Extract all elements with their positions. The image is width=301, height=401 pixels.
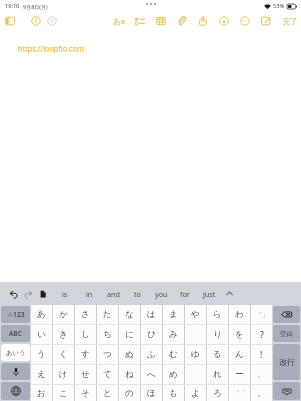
button[interactable]: Back (28, 13, 44, 29)
button[interactable]: り (207, 325, 228, 344)
button[interactable]: Attach (171, 13, 192, 29)
button[interactable]: よ (185, 385, 206, 401)
button[interactable]: and (101, 282, 125, 305)
staticText: れ (213, 369, 222, 380)
button[interactable]: Format (108, 13, 129, 29)
button[interactable]: め (163, 365, 184, 384)
button[interactable]: い (31, 325, 52, 344)
staticText: へ (147, 369, 156, 380)
staticText: え (37, 369, 46, 380)
button[interactable]: New note (255, 13, 276, 29)
button[interactable]: み (163, 325, 184, 344)
button[interactable]: た (97, 305, 118, 324)
button[interactable]: や (185, 305, 206, 324)
staticText: ABC (9, 329, 22, 338)
button[interactable]: す (75, 345, 96, 364)
button[interactable]: ん (229, 345, 250, 364)
button[interactable]: 改行 (273, 344, 300, 380)
button[interactable]: そ (75, 385, 96, 401)
button[interactable]: て (97, 365, 118, 384)
button[interactable]: と (97, 385, 118, 401)
button[interactable]: ち (97, 325, 118, 344)
button[interactable]: 「」 (251, 305, 272, 324)
button[interactable]: Paste (36, 287, 50, 301)
button[interactable]: わ (229, 305, 250, 324)
button[interactable]: Forward (44, 13, 60, 29)
button[interactable]: is (53, 282, 77, 305)
button[interactable]: Markup (213, 13, 234, 29)
button[interactable]: ま (163, 305, 184, 324)
button[interactable]: く (53, 345, 74, 364)
button[interactable]: just (197, 282, 221, 305)
button[interactable]: し (75, 325, 96, 344)
staticText: こ (59, 388, 68, 399)
button[interactable]: か (53, 305, 74, 324)
button[interactable]: き (53, 325, 74, 344)
button[interactable]: in (77, 282, 101, 305)
button[interactable]: ほ (141, 385, 162, 401)
button[interactable]: ! (251, 345, 272, 364)
button[interactable]: れ (207, 365, 228, 384)
button[interactable]: あいう (1, 344, 30, 361)
button[interactable]: ☆123 (1, 306, 30, 323)
staticText: https://loopfio.com (18, 43, 84, 53)
button[interactable]: も (163, 385, 184, 401)
button[interactable]: Checklist (129, 13, 150, 29)
staticText: わ (235, 309, 244, 320)
button[interactable]: な (119, 305, 140, 324)
button[interactable]: https://loopfio.com (18, 43, 84, 53)
button[interactable]: ら (207, 305, 228, 324)
button[interactable]: ね (119, 365, 140, 384)
button[interactable]: Hide keyboard (273, 382, 300, 400)
button[interactable]: せ (75, 365, 96, 384)
button[interactable]: お (31, 385, 52, 401)
button[interactable]: に (119, 325, 140, 344)
button[interactable]: む (163, 345, 184, 364)
button[interactable]: ー (229, 365, 250, 384)
staticText: き (59, 329, 68, 340)
button[interactable]: ゛゜ (229, 385, 250, 401)
button[interactable]: More (234, 13, 255, 29)
button[interactable]: Dictation (1, 363, 30, 380)
button[interactable]: Delete (273, 306, 300, 323)
button[interactable]: Table (150, 13, 171, 29)
button[interactable]: Share (192, 13, 213, 29)
button[interactable]: Redo (21, 287, 35, 301)
button[interactable]: ABC (1, 325, 30, 342)
staticText: あ (37, 309, 46, 320)
staticText: and (107, 289, 120, 299)
button[interactable]: ひ (141, 325, 162, 344)
button[interactable]: う (31, 345, 52, 364)
staticText: く (59, 349, 68, 360)
button[interactable]: つ (97, 345, 118, 364)
button[interactable]: to (125, 282, 149, 305)
button[interactable]: 、 (251, 365, 272, 384)
button[interactable]: Expand (221, 282, 237, 305)
button[interactable]: る (207, 345, 228, 364)
button[interactable]: こ (53, 385, 74, 401)
button[interactable]: ? (251, 325, 272, 344)
button[interactable]: you (149, 282, 173, 305)
button[interactable]: for (173, 282, 197, 305)
button[interactable]: 空白 (273, 325, 300, 342)
staticText: を (235, 329, 244, 340)
button[interactable]: Undo (6, 287, 20, 301)
button[interactable]: を (229, 325, 250, 344)
button[interactable]: は (141, 305, 162, 324)
button[interactable]: ふ (141, 345, 162, 364)
button[interactable]: ゆ (185, 345, 206, 364)
button[interactable]: ぬ (119, 345, 140, 364)
button[interactable]: Sidebar (2, 13, 18, 29)
button[interactable]: 完了 (283, 17, 298, 26)
button[interactable]: の (119, 385, 140, 401)
button[interactable]: え (31, 365, 52, 384)
button[interactable]: あ (31, 305, 52, 324)
button[interactable]: Switch keyboard (1, 382, 30, 400)
button[interactable]: け (53, 365, 74, 384)
button[interactable]: 。 (251, 385, 272, 401)
button[interactable]: さ (75, 305, 96, 324)
button[interactable]: へ (141, 365, 162, 384)
button[interactable]: ろ (207, 385, 228, 401)
